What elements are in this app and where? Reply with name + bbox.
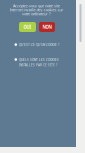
- button[interactable]: OUI: [19, 22, 36, 32]
- button[interactable]: QU'EST-CE QU'UN COOKIE ?: [14, 43, 59, 47]
- staticText: Acceptez-vous que notre site: [13, 3, 60, 8]
- staticText: QU'EST-CE QU'UN COOKIE ?: [19, 43, 59, 47]
- staticText: OUI: [23, 24, 31, 30]
- staticText: Internet installe des cookies sur: [9, 7, 63, 12]
- button[interactable]: QUELS SONT LES COOKIES: [14, 58, 59, 67]
- staticText: NON: [42, 24, 51, 30]
- staticText: votre ordinateur ?: [22, 11, 51, 16]
- staticText: INSTALLÉS PAR CE SITE ?: [19, 63, 57, 67]
- button[interactable]: NON: [39, 22, 55, 32]
- staticText: QUELS SONT LES COOKIES: [19, 58, 59, 62]
